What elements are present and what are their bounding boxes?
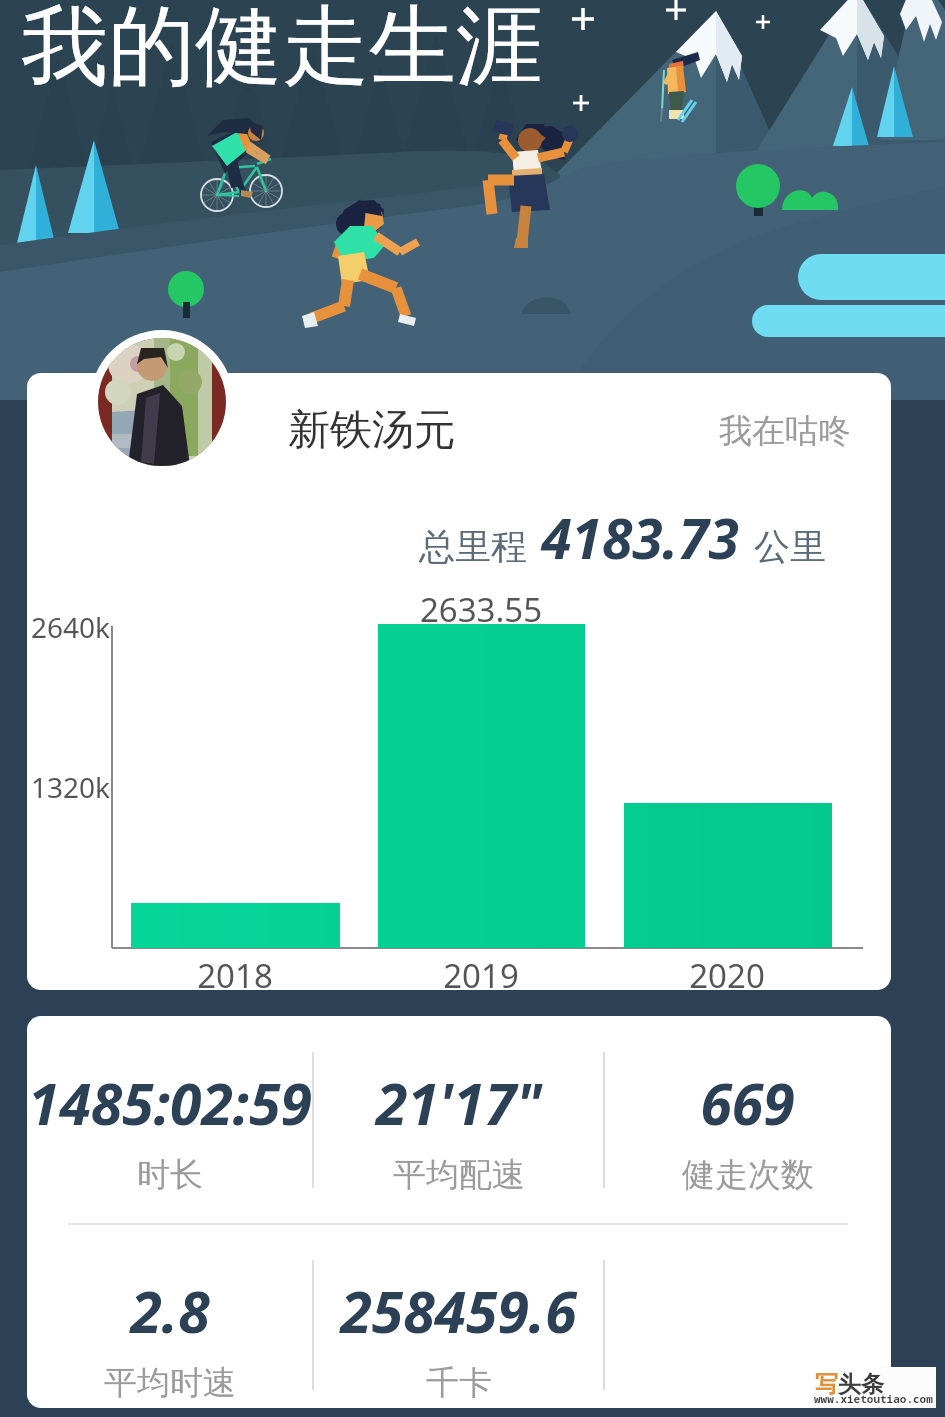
staticText: 总里程 bbox=[419, 524, 527, 569]
staticText: 健走次数 bbox=[682, 1154, 814, 1196]
staticText: 258459.6 bbox=[340, 1272, 577, 1350]
staticText: 2018 bbox=[115, 953, 355, 990]
button[interactable]: 新铁汤元 bbox=[288, 398, 488, 462]
button[interactable]: 258459.6 bbox=[313, 1272, 604, 1404]
staticText: 2020 bbox=[607, 953, 847, 990]
staticText: 4183.73 bbox=[527, 500, 754, 575]
staticText: 1485:02:59 bbox=[28, 1064, 312, 1142]
staticText: 21'17" bbox=[376, 1064, 542, 1142]
button[interactable]: 669 bbox=[604, 1064, 891, 1196]
staticText: 2640k bbox=[27, 608, 110, 646]
staticText: 我的健走生涯 bbox=[21, 0, 543, 102]
staticText: 2633.55 bbox=[361, 587, 601, 632]
staticText: 平均配速 bbox=[393, 1154, 525, 1196]
staticText: www.xietoutiao.com bbox=[814, 1391, 933, 1406]
staticText: 千卡 bbox=[426, 1362, 492, 1404]
staticText: 我在咕咚 bbox=[719, 410, 851, 452]
button[interactable]: 我在咕咚 bbox=[711, 403, 859, 459]
button[interactable]: Profile photo bbox=[90, 330, 234, 474]
button[interactable]: 1485:02:59 bbox=[27, 1016, 891, 1408]
staticText: 头条 bbox=[838, 1370, 884, 1399]
staticText: 写 bbox=[815, 1370, 838, 1399]
staticText: 新铁汤元 bbox=[288, 404, 456, 457]
staticText: 669 bbox=[700, 1064, 795, 1142]
staticText: 公里 bbox=[754, 524, 826, 569]
button[interactable]: 1485:02:59 bbox=[27, 1064, 313, 1196]
button[interactable]: 2.8 bbox=[27, 1272, 313, 1404]
staticText: 2019 bbox=[361, 953, 601, 990]
button[interactable]: 21'17" bbox=[313, 1064, 604, 1196]
staticText: 时长 bbox=[137, 1154, 203, 1196]
button[interactable]: 新铁汤元 bbox=[27, 373, 891, 990]
staticText: 平均时速 bbox=[104, 1362, 236, 1404]
staticText: 2.8 bbox=[130, 1272, 210, 1350]
staticText: 1320k bbox=[27, 768, 110, 806]
